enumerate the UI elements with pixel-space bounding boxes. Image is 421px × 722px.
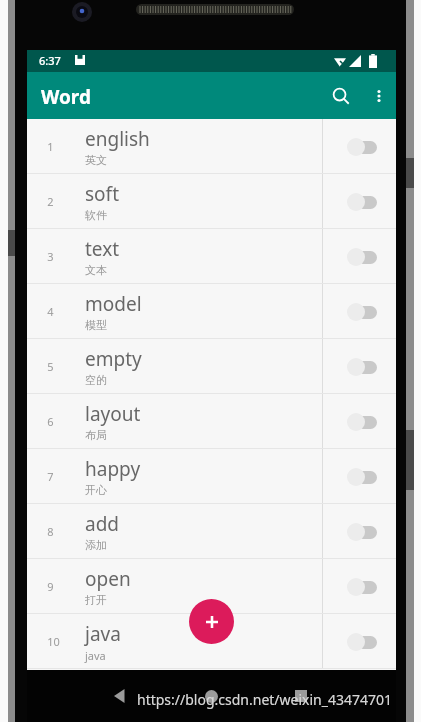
- button[interactable]: Toggle java: [345, 629, 387, 655]
- button[interactable]: Search: [325, 80, 357, 112]
- staticText: 文本: [85, 263, 107, 277]
- button[interactable]: Home: [195, 680, 227, 712]
- staticText: 7: [47, 469, 54, 484]
- button[interactable]: Toggle happy: [345, 464, 387, 490]
- staticText: text: [85, 236, 120, 262]
- staticText: https://blog.csdn.net/weixin_43474701: [137, 690, 393, 709]
- button[interactable]: Toggle model: [345, 299, 387, 325]
- staticText: 英文: [85, 153, 107, 167]
- button[interactable]: 5: [27, 339, 396, 394]
- staticText: 5: [47, 359, 54, 374]
- staticText: 1: [47, 139, 54, 154]
- button[interactable]: Back: [105, 680, 137, 712]
- button[interactable]: 8: [27, 504, 396, 559]
- staticText: 9: [47, 579, 54, 594]
- button[interactable]: 10: [27, 614, 396, 669]
- staticText: java: [85, 648, 106, 663]
- staticText: 6:37: [39, 53, 61, 68]
- staticText: layout: [85, 401, 141, 427]
- staticText: 添加: [85, 538, 107, 552]
- button[interactable]: 3: [27, 229, 396, 284]
- button[interactable]: Toggle open: [345, 574, 387, 600]
- staticText: 4: [47, 304, 54, 319]
- staticText: 空的: [85, 373, 107, 387]
- staticText: add: [85, 511, 120, 537]
- staticText: 2: [47, 194, 54, 209]
- staticText: 10: [47, 634, 60, 649]
- button[interactable]: 2: [27, 174, 396, 229]
- button[interactable]: 6: [27, 394, 396, 449]
- staticText: empty: [85, 346, 142, 372]
- button[interactable]: 9: [27, 559, 396, 614]
- staticText: happy: [85, 456, 141, 482]
- staticText: 6: [47, 414, 54, 429]
- staticText: 软件: [85, 208, 107, 222]
- staticText: Word: [41, 84, 91, 110]
- staticText: 3: [47, 249, 54, 264]
- staticText: 8: [47, 524, 54, 539]
- staticText: 开心: [85, 483, 107, 497]
- button[interactable]: Toggle english: [345, 134, 387, 160]
- button[interactable]: Recent apps: [285, 680, 317, 712]
- button[interactable]: 4: [27, 284, 396, 339]
- staticText: 布局: [85, 428, 107, 442]
- button[interactable]: Add word: [189, 599, 234, 644]
- button[interactable]: More options: [363, 80, 395, 112]
- button[interactable]: Toggle empty: [345, 354, 387, 380]
- staticText: 打开: [85, 593, 107, 607]
- staticText: open: [85, 566, 131, 592]
- button[interactable]: 7: [27, 449, 396, 504]
- button[interactable]: Toggle layout: [345, 409, 387, 435]
- staticText: model: [85, 291, 142, 317]
- button[interactable]: Toggle soft: [345, 189, 387, 215]
- staticText: java: [85, 621, 121, 647]
- staticText: soft: [85, 181, 119, 207]
- button[interactable]: 1: [27, 119, 396, 174]
- button[interactable]: Toggle text: [345, 244, 387, 270]
- staticText: english: [85, 126, 150, 152]
- staticText: 模型: [85, 318, 107, 332]
- button[interactable]: Toggle add: [345, 519, 387, 545]
